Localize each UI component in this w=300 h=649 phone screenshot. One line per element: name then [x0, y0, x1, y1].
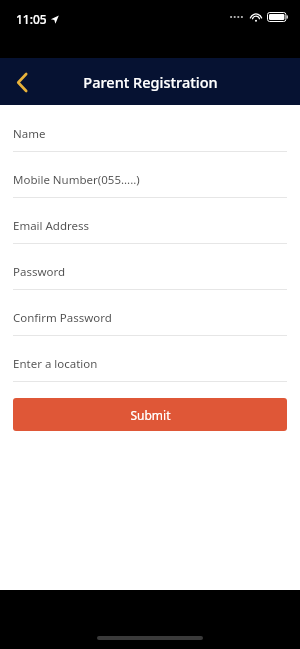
staticText: Enter a location — [13, 356, 98, 372]
button[interactable]: Name — [0, 116, 300, 162]
staticText: Mobile Number(055.....) — [13, 172, 140, 188]
button[interactable]: Confirm Password — [0, 300, 300, 346]
button[interactable]: Back — [0, 60, 44, 104]
staticText: 11:05 — [16, 11, 47, 27]
staticText: Email Address — [13, 218, 90, 234]
staticText: Submit — [130, 407, 171, 423]
staticText: Password — [13, 264, 66, 280]
button[interactable]: Submit — [13, 398, 287, 431]
staticText: Parent Registration — [83, 72, 218, 92]
staticText: Name — [13, 126, 46, 142]
button[interactable]: Enter a location — [0, 346, 300, 392]
button[interactable]: Mobile Number(055.....) — [0, 162, 300, 208]
button[interactable]: Password — [0, 254, 300, 300]
button[interactable]: Email Address — [0, 208, 300, 254]
staticText: Confirm Password — [13, 310, 112, 326]
